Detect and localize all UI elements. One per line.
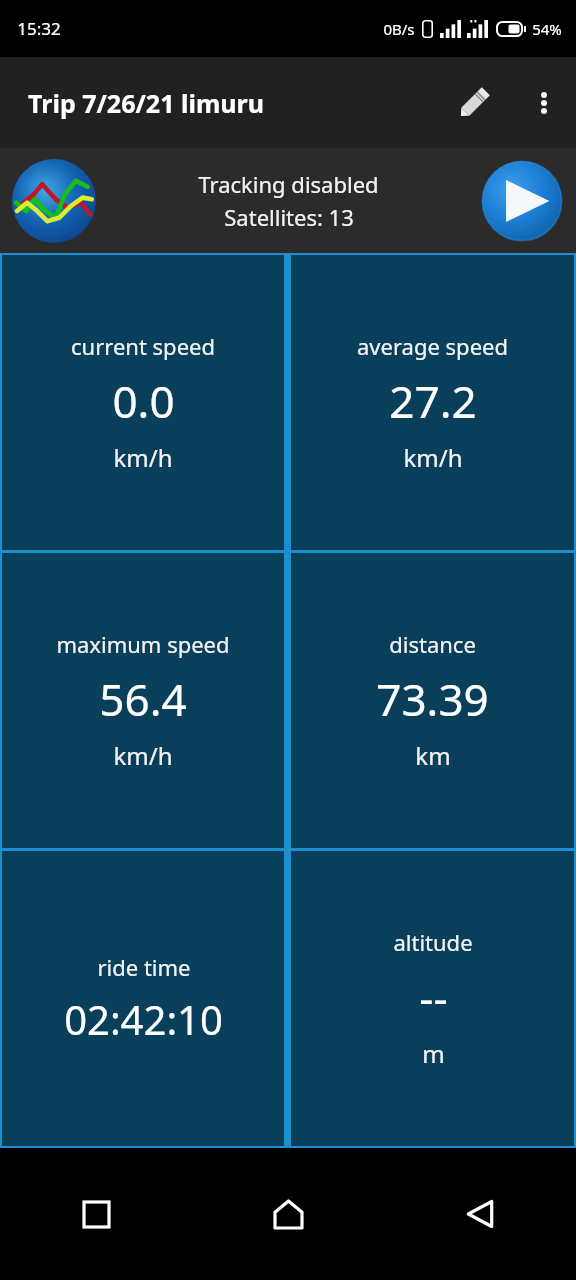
staticText: Trip 7/26/21 limuru [28,86,264,120]
staticText: 15:32 [17,17,61,40]
staticText: m [422,1037,445,1070]
staticText: km [415,739,451,772]
button[interactable]: average speed [291,255,574,550]
button[interactable]: Edit trip name [436,57,512,148]
staticText: 02:42:10 [64,992,223,1046]
staticText: 0.0 [112,371,175,431]
button[interactable]: current speed [2,255,284,550]
staticText: Satellites: 13 [224,202,354,232]
button[interactable]: altitude [291,851,574,1146]
button[interactable]: Home [192,1148,384,1280]
button[interactable]: distance [291,553,574,848]
staticText: 27.2 [389,371,477,431]
staticText: maximum speed [56,629,230,659]
staticText: 0B/s [383,19,415,39]
staticText: 73.39 [376,669,489,729]
staticText: average speed [357,331,508,361]
staticText: Tracking disabled [198,169,379,199]
staticText: ride time [97,952,191,982]
staticText: altitude [393,927,473,957]
button[interactable]: Start tracking [480,159,564,243]
staticText: 56.4 [99,669,187,729]
staticText: km/h [113,739,173,772]
staticText: distance [389,629,476,659]
button[interactable]: maximum speed [2,553,284,848]
staticText: km/h [113,441,173,474]
staticText: km/h [403,441,463,474]
button[interactable]: ride time [2,851,284,1146]
button[interactable]: More options [512,57,576,148]
button[interactable]: Back [384,1148,576,1280]
staticText: -- [419,967,448,1027]
button[interactable]: Recent apps [0,1148,192,1280]
staticText: current speed [71,331,215,361]
button[interactable]: Map [9,156,98,245]
staticText: 54% [532,19,562,39]
